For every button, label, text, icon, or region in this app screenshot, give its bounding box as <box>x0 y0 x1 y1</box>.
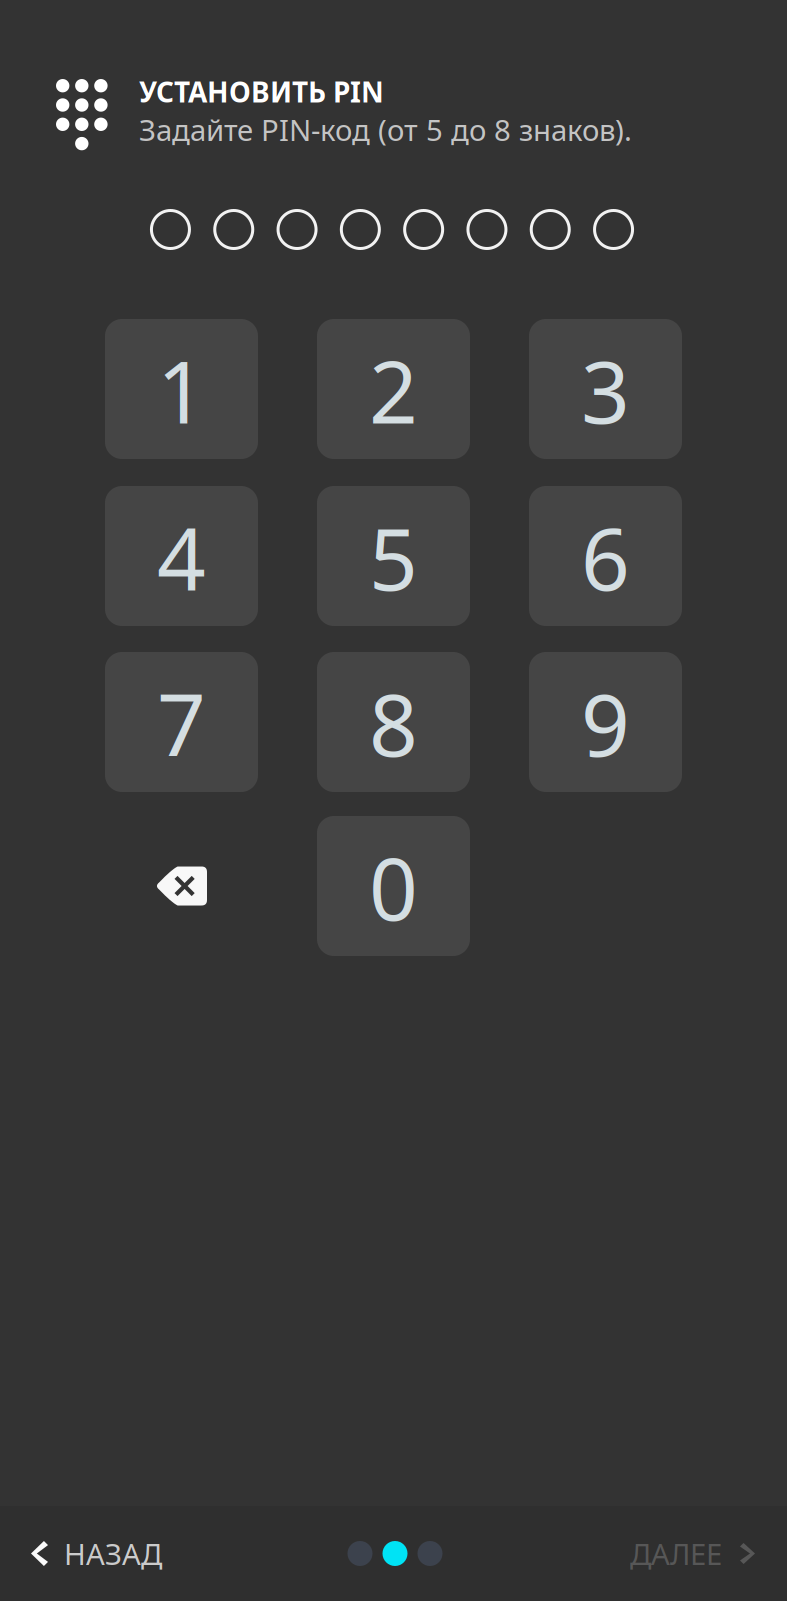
button[interactable]: 9 <box>529 652 682 792</box>
staticText: НАЗАД <box>64 1534 162 1573</box>
staticText: 5 <box>369 501 418 614</box>
staticText: 2 <box>369 334 418 447</box>
button[interactable]: 8 <box>317 652 470 792</box>
staticText: 1 <box>157 334 206 447</box>
button[interactable]: 2 <box>317 319 470 459</box>
button[interactable]: 7 <box>105 652 258 792</box>
staticText: 8 <box>369 667 418 780</box>
staticText: 3 <box>581 334 630 447</box>
button[interactable]: 6 <box>529 486 682 626</box>
staticText: 0 <box>369 831 418 944</box>
staticText: ДАЛЕЕ <box>630 1534 722 1573</box>
staticText: 7 <box>157 667 206 780</box>
button[interactable]: 3 <box>529 319 682 459</box>
button[interactable]: 5 <box>317 486 470 626</box>
button[interactable]: ДАЛЕЕ <box>606 1506 787 1601</box>
button[interactable]: Удалить <box>105 816 258 956</box>
button[interactable]: 0 <box>317 816 470 956</box>
button[interactable]: НАЗАД <box>0 1506 186 1601</box>
staticText: 6 <box>581 501 630 614</box>
staticText: 4 <box>157 501 206 614</box>
button[interactable]: 4 <box>105 486 258 626</box>
staticText: Задайте PIN-код (от 5 до 8 знаков). <box>139 110 632 149</box>
button[interactable]: 1 <box>105 319 258 459</box>
staticText: 9 <box>581 667 630 780</box>
staticText: УСТАНОВИТЬ PIN <box>139 73 384 110</box>
